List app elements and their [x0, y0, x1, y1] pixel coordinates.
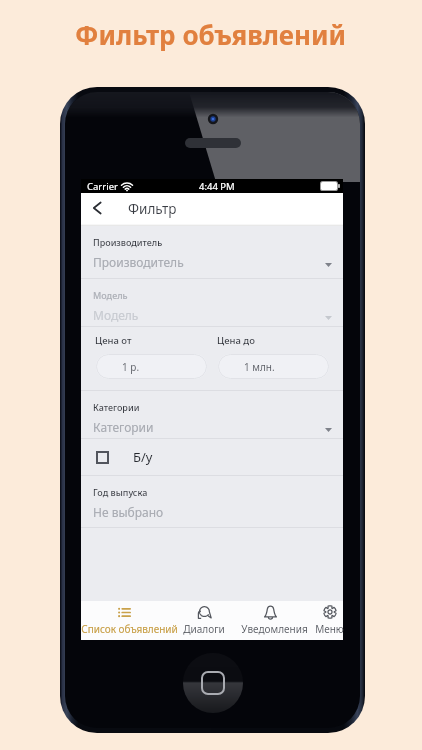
staticText: Год выпуска	[93, 486, 148, 498]
button[interactable]: Диалоги	[167, 601, 241, 640]
staticText: Диалоги	[183, 622, 225, 636]
button[interactable]: 1 р.	[96, 354, 207, 379]
button[interactable]: Назад	[81, 193, 113, 226]
button[interactable]: 1 млн.	[218, 354, 329, 379]
staticText: Список объявлений	[81, 622, 167, 636]
staticText: Carrier	[87, 180, 118, 193]
button[interactable]: Категории	[81, 391, 343, 438]
staticText: Категории	[93, 401, 140, 413]
staticText: Не выбрано	[93, 504, 164, 520]
staticText: 1 млн.	[244, 360, 275, 374]
staticText: Цена до	[217, 334, 255, 347]
staticText: Производитель	[93, 254, 184, 270]
button[interactable]: Меню	[299, 601, 360, 640]
staticText: Модель	[93, 289, 128, 301]
staticText: Фильтр	[128, 200, 177, 218]
staticText: 1 р.	[122, 360, 140, 374]
button[interactable]: Б/у	[81, 439, 343, 475]
staticText: Модель	[93, 307, 139, 323]
staticText: Фильтр объявлений	[75, 17, 347, 52]
staticText: Цена от	[95, 334, 132, 347]
staticText: Производитель	[93, 236, 163, 248]
button[interactable]: Производитель	[81, 226, 343, 278]
staticText: Уведомления	[241, 622, 299, 636]
button[interactable]: Год выпуска	[81, 476, 343, 527]
button[interactable]: Модель	[81, 279, 343, 326]
staticText: Б/у	[133, 448, 153, 466]
staticText: Меню	[315, 622, 344, 636]
staticText: 4:44 PM	[199, 180, 235, 193]
button[interactable]: Уведомления	[241, 601, 299, 640]
button[interactable]: Список объявлений	[81, 601, 167, 640]
staticText: Категории	[93, 419, 154, 435]
